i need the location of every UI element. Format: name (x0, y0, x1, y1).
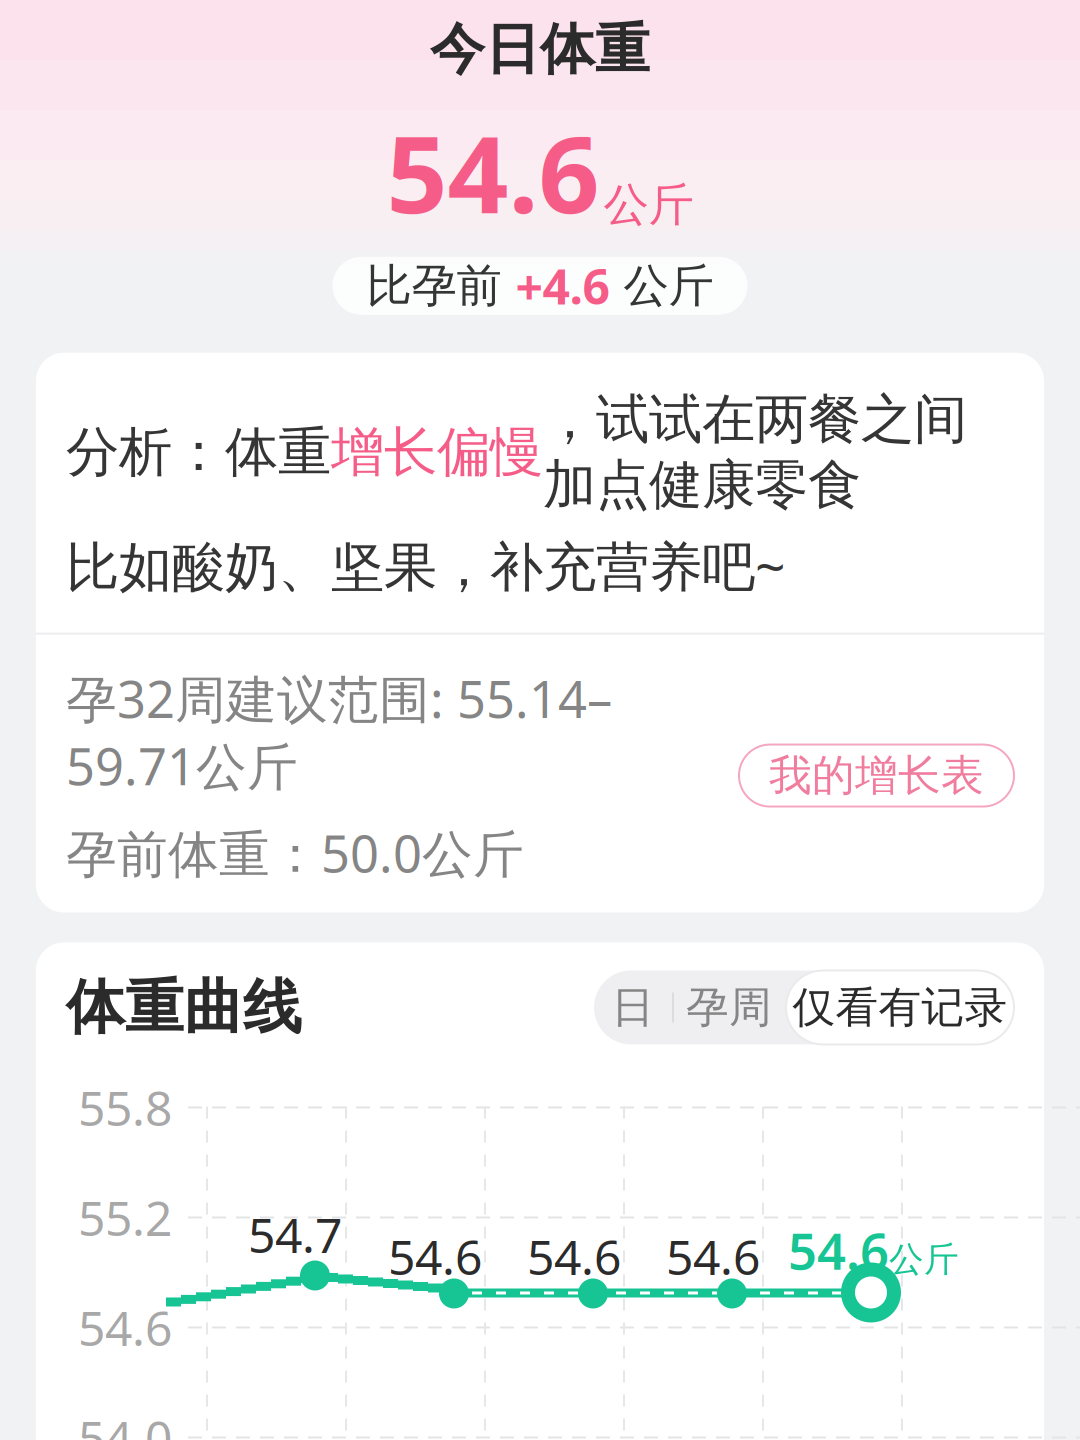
staticText: 55.2 (78, 1186, 172, 1249)
staticText: 公斤 (603, 177, 693, 233)
staticText: +4.6 (515, 254, 609, 318)
staticText: 54.6 (386, 101, 599, 243)
staticText: 公斤 (889, 1238, 959, 1281)
staticText: 55.8 (78, 1076, 172, 1139)
staticText: 54.6 (78, 1296, 172, 1359)
staticText: 我的增长表 (769, 749, 984, 802)
staticText: 54.7 (248, 1202, 342, 1266)
button[interactable]: 比孕前 (332, 257, 747, 315)
staticText: 孕周 (686, 981, 772, 1034)
staticText: 日 (611, 981, 654, 1034)
staticText: 今日体重 (430, 16, 650, 83)
button[interactable]: 孕周 (674, 970, 784, 1044)
staticText: 孕32周建议范围: 55.14–59.71公斤 (66, 665, 612, 799)
staticText: 54.6 (666, 1224, 760, 1288)
staticText: 比如酸奶、坚果，补充营养吧~ (66, 530, 786, 601)
staticText: ，试试在两餐之间加点健康零食 (543, 387, 967, 518)
staticText: 公斤 (609, 258, 713, 314)
staticText: 比孕前 (366, 258, 515, 314)
button[interactable]: 日 (594, 970, 672, 1044)
staticText: 仅看有记录 (792, 981, 1007, 1034)
staticText: 分析：体重 (66, 419, 331, 485)
staticText: 54.6 (527, 1224, 621, 1288)
staticText: 54.0 (78, 1406, 172, 1440)
staticText: 54.6 (788, 1216, 889, 1284)
button[interactable]: 我的增长表 (739, 745, 1014, 807)
staticText: 体重曲线 (66, 971, 302, 1044)
staticText: 增长偏慢 (331, 419, 543, 485)
button[interactable]: 仅看有记录 (786, 970, 1014, 1044)
staticText: 孕前体重：50.0公斤 (66, 819, 524, 886)
staticText: 54.6 (388, 1224, 482, 1288)
